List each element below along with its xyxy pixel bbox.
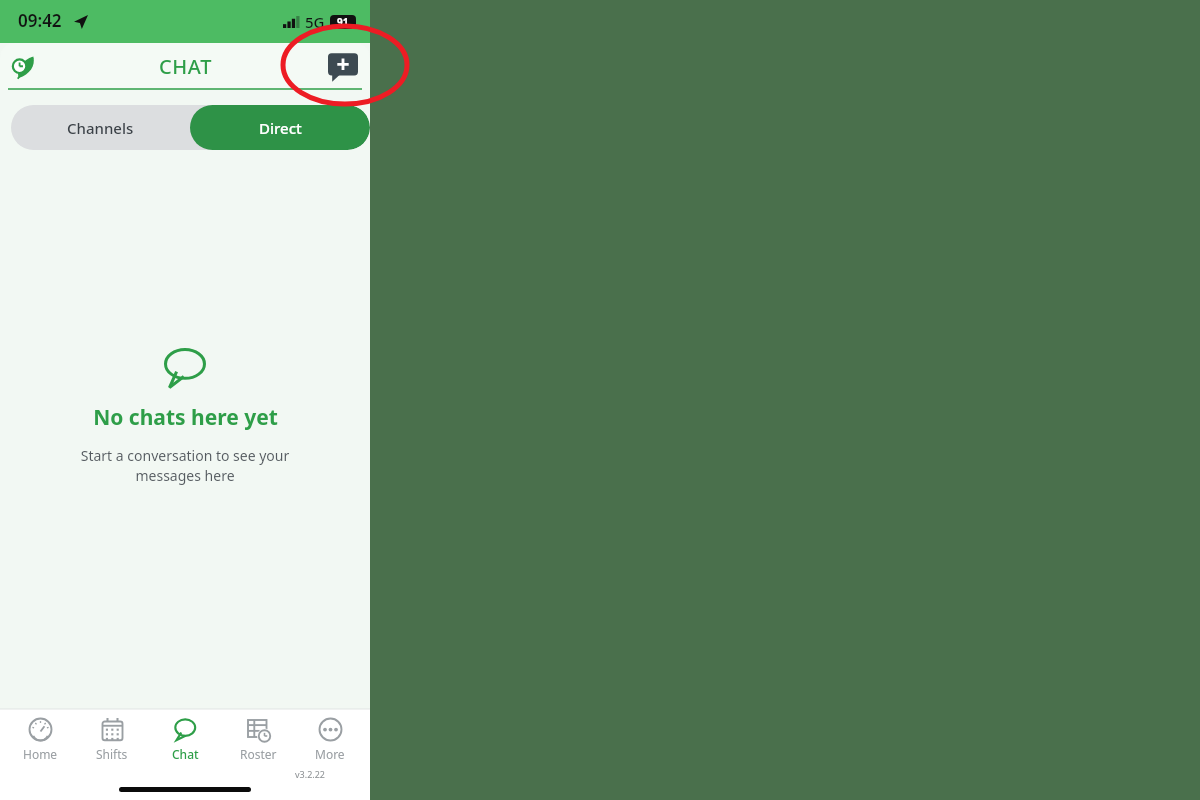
staticText: No chats here yet bbox=[93, 403, 278, 432]
button[interactable]: Home bbox=[7, 710, 73, 768]
staticText: 91 bbox=[337, 15, 349, 29]
staticText: Channels bbox=[67, 118, 134, 138]
staticText: CHAT bbox=[159, 53, 212, 80]
staticText: 09:42 bbox=[18, 9, 62, 32]
button[interactable]: Channels bbox=[11, 105, 190, 150]
staticText: Roster bbox=[240, 746, 277, 762]
staticText: More bbox=[315, 746, 345, 762]
button[interactable]: More bbox=[297, 710, 363, 768]
button[interactable]: Chat bbox=[152, 710, 218, 768]
staticText: Direct bbox=[259, 118, 302, 138]
button[interactable]: Roster bbox=[225, 710, 291, 768]
staticText: Shifts bbox=[96, 746, 128, 762]
button[interactable]: Shifts bbox=[79, 710, 145, 768]
staticText: Start a conversation to see your message… bbox=[70, 446, 300, 486]
staticText: 5G bbox=[305, 12, 325, 32]
staticText: v3.2.22 bbox=[295, 768, 325, 780]
button[interactable]: New chat bbox=[328, 52, 358, 82]
staticText: Chat bbox=[172, 746, 199, 762]
other: Logo bbox=[11, 54, 37, 80]
staticText: Home bbox=[23, 746, 58, 762]
button[interactable]: Direct bbox=[190, 105, 370, 150]
